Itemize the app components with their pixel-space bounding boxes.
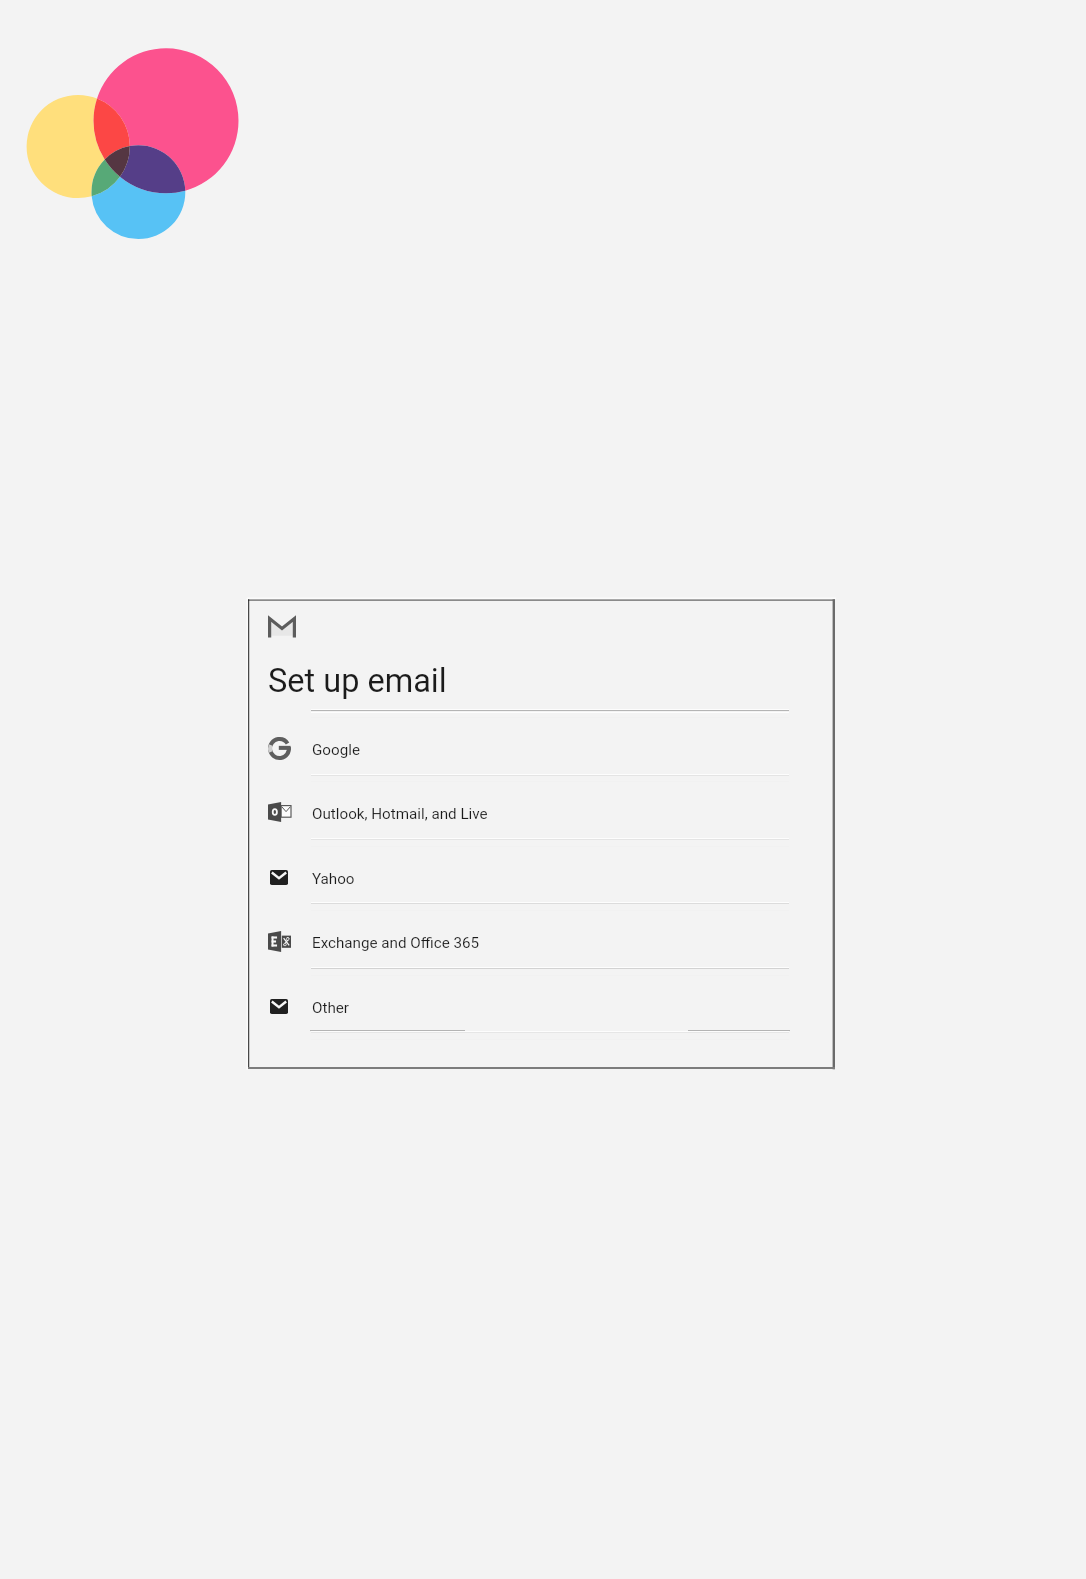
button[interactable]: Google xyxy=(248,722,835,786)
other: Email xyxy=(270,999,288,1014)
staticText: Outlook, Hotmail, and Live xyxy=(312,805,488,823)
other: Outlook xyxy=(268,802,291,822)
staticText: Other xyxy=(312,999,349,1017)
button[interactable]: Email xyxy=(248,980,835,1044)
button[interactable]: Outlook xyxy=(248,786,835,850)
other: Lenovo logo xyxy=(20,30,250,260)
staticText: Yahoo xyxy=(312,870,355,888)
other: Google xyxy=(268,737,291,760)
button[interactable]: Email xyxy=(248,851,835,915)
other: Gmail xyxy=(268,617,296,639)
staticText: Exchange and Office 365 xyxy=(312,934,480,952)
other: Exchange xyxy=(268,931,291,952)
staticText: Google xyxy=(312,741,360,759)
staticText: Set up email xyxy=(268,662,447,700)
button[interactable]: Exchange xyxy=(248,915,835,979)
other: Email xyxy=(270,870,288,885)
